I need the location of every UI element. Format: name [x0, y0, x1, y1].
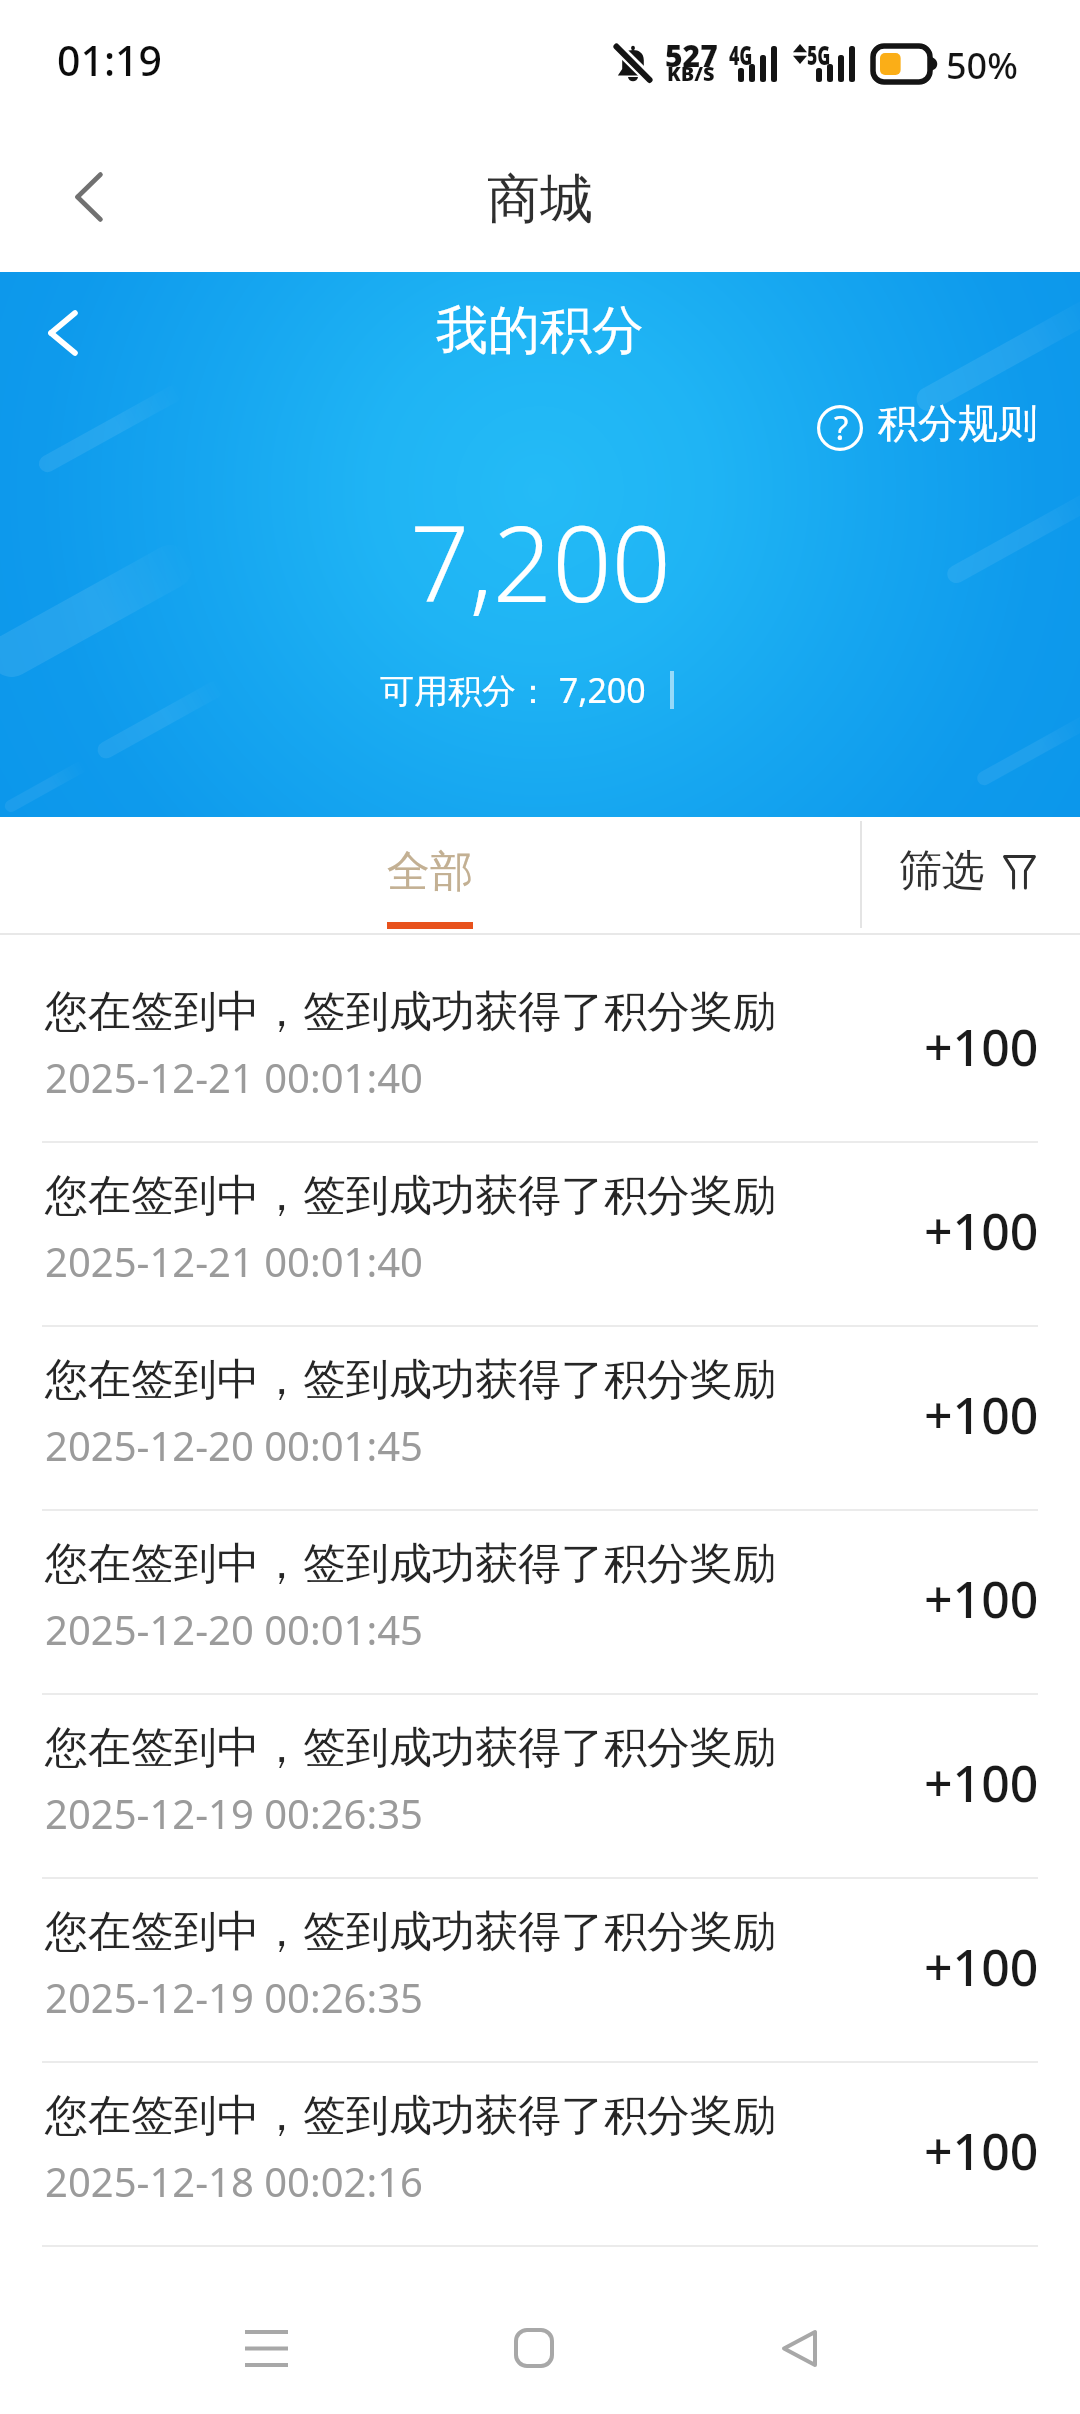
- button[interactable]: Back: [21, 291, 105, 375]
- button[interactable]: Back: [47, 155, 131, 239]
- staticText: 2025-12-19 00:26:35: [45, 1970, 423, 2024]
- button[interactable]: ?: [817, 405, 1038, 455]
- staticText: 商城: [487, 166, 593, 233]
- staticText: 01:19: [57, 32, 162, 88]
- button[interactable]: 您在签到中，签到成功获得了积分奖励: [0, 2063, 1080, 2247]
- staticText: 5G: [807, 37, 831, 72]
- staticText: 您在签到中，签到成功获得了积分奖励: [45, 2089, 776, 2143]
- staticText: 您在签到中，签到成功获得了积分奖励: [45, 1353, 776, 1407]
- staticText: 2025-12-19 00:26:35: [45, 1786, 423, 1840]
- staticText: 4G: [729, 37, 753, 72]
- staticText: 您在签到中，签到成功获得了积分奖励: [45, 1537, 776, 1591]
- button[interactable]: 您在签到中，签到成功获得了积分奖励: [0, 1511, 1080, 1695]
- staticText: 全部: [387, 845, 473, 899]
- button[interactable]: 您在签到中，签到成功获得了积分奖励: [0, 959, 1080, 1143]
- button[interactable]: Back: [719, 2288, 879, 2408]
- staticText: 50%: [946, 41, 1018, 90]
- button[interactable]: 您在签到中，签到成功获得了积分奖励: [0, 1327, 1080, 1511]
- staticText: +100: [924, 1013, 1039, 1081]
- button[interactable]: Home: [454, 2288, 614, 2408]
- staticText: 2025-12-21 00:01:40: [45, 1050, 423, 1104]
- staticText: +100: [924, 1565, 1039, 1633]
- button[interactable]: 筛选: [899, 844, 1036, 898]
- staticText: ?: [834, 405, 849, 450]
- staticText: 2025-12-20 00:01:45: [45, 1418, 423, 1472]
- staticText: +100: [924, 1381, 1039, 1449]
- button[interactable]: 您在签到中，签到成功获得了积分奖励: [0, 1143, 1080, 1327]
- staticText: 筛选: [899, 844, 985, 898]
- staticText: +100: [924, 1197, 1039, 1265]
- staticText: 积分规则: [878, 398, 1038, 448]
- button[interactable]: 您在签到中，签到成功获得了积分奖励: [0, 1695, 1080, 1879]
- staticText: 您在签到中，签到成功获得了积分奖励: [45, 1905, 776, 1959]
- staticText: 您在签到中，签到成功获得了积分奖励: [45, 1721, 776, 1775]
- staticText: 2025-12-20 00:01:45: [45, 1602, 423, 1656]
- staticText: KB/S: [667, 60, 715, 87]
- staticText: 527: [665, 35, 718, 76]
- staticText: 7,200: [410, 491, 671, 633]
- staticText: +100: [924, 1749, 1039, 1817]
- staticText: +100: [924, 2117, 1039, 2185]
- button[interactable]: 您在签到中，签到成功获得了积分奖励: [0, 1879, 1080, 2063]
- staticText: 可用积分： 7,200: [380, 667, 646, 713]
- staticText: 2025-12-21 00:01:40: [45, 1234, 423, 1288]
- staticText: 您在签到中，签到成功获得了积分奖励: [45, 985, 776, 1039]
- staticText: 2025-12-18 00:02:16: [45, 2154, 423, 2208]
- staticText: 您在签到中，签到成功获得了积分奖励: [45, 1169, 776, 1223]
- staticText: +100: [924, 1933, 1039, 2001]
- button[interactable]: Recent apps: [186, 2288, 346, 2408]
- button[interactable]: 全部: [0, 817, 860, 929]
- staticText: 我的积分: [436, 298, 644, 364]
